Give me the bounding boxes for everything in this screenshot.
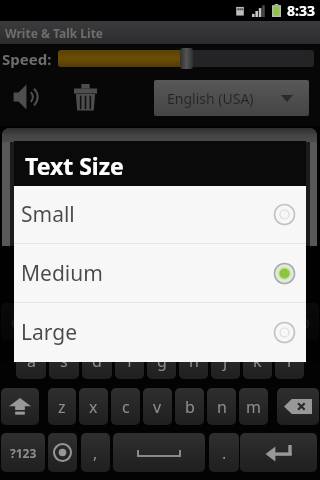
- staticText: n: [217, 396, 227, 418]
- button[interactable]: c: [111, 388, 140, 425]
- button[interactable]: b: [175, 388, 204, 425]
- button[interactable]: ,: [81, 433, 110, 472]
- button[interactable]: Speak: [7, 75, 51, 119]
- button[interactable]: English (USA): [154, 80, 309, 116]
- staticText: Speed:: [2, 49, 52, 69]
- button[interactable]: s: [49, 342, 79, 379]
- staticText: m: [246, 396, 261, 418]
- staticText: h: [189, 350, 199, 372]
- button[interactable]: w: [34, 303, 63, 340]
- staticText: s: [60, 350, 68, 372]
- button[interactable]: n: [207, 388, 236, 425]
- button[interactable]: j: [211, 342, 240, 379]
- staticText: g: [157, 350, 167, 372]
- staticText: Medium: [21, 259, 103, 288]
- button[interactable]: .: [209, 433, 239, 472]
- button[interactable]: Large: [14, 303, 306, 362]
- staticText: l: [287, 350, 292, 372]
- staticText: d: [92, 350, 102, 372]
- button[interactable]: q: [1, 303, 31, 340]
- button[interactable]: f: [115, 342, 144, 379]
- staticText: x: [89, 396, 98, 418]
- staticText: k: [253, 350, 262, 372]
- staticText: w: [42, 311, 55, 333]
- staticText: z: [58, 396, 66, 418]
- staticText: q: [11, 311, 21, 333]
- button[interactable]: l: [275, 342, 304, 379]
- button[interactable]: Settings: [48, 433, 77, 472]
- staticText: v: [153, 396, 162, 418]
- button[interactable]: m: [239, 388, 268, 425]
- staticText: j: [223, 350, 228, 372]
- staticText: .: [222, 442, 227, 464]
- button[interactable]: x: [79, 388, 108, 425]
- staticText: Small: [21, 200, 75, 229]
- button[interactable]: Medium: [14, 244, 306, 302]
- button[interactable]: h: [179, 342, 208, 379]
- button[interactable]: g: [147, 342, 176, 379]
- button[interactable]: e: [66, 303, 95, 340]
- staticText: English (USA): [167, 89, 254, 108]
- staticText: f: [127, 350, 133, 372]
- button[interactable]: v: [143, 388, 172, 425]
- staticText: a: [27, 350, 36, 372]
- button[interactable]: Backspace: [277, 388, 319, 425]
- button[interactable]: z: [48, 388, 76, 425]
- staticText: Large: [21, 318, 78, 347]
- button[interactable]: p: [290, 303, 319, 340]
- button[interactable]: a: [16, 342, 46, 379]
- staticText: o: [268, 311, 278, 333]
- staticText: b: [185, 396, 195, 418]
- button[interactable]: Delete: [63, 76, 107, 120]
- staticText: c: [122, 396, 130, 418]
- staticText: ?123: [10, 445, 37, 461]
- button[interactable]: Shift: [1, 388, 39, 425]
- staticText: Write & Talk Lite: [5, 25, 104, 41]
- staticText: p: [300, 311, 310, 333]
- button[interactable]: k: [243, 342, 272, 379]
- button[interactable]: Space: [113, 433, 205, 472]
- button[interactable]: o: [258, 303, 287, 340]
- button[interactable]: Small: [14, 186, 306, 243]
- staticText: Text Size: [25, 150, 124, 181]
- staticText: ,: [93, 442, 98, 464]
- staticText: 8:33: [287, 1, 315, 20]
- button[interactable]: d: [82, 342, 112, 379]
- button[interactable]: Enter: [240, 433, 317, 472]
- button[interactable]: ?123: [1, 433, 45, 472]
